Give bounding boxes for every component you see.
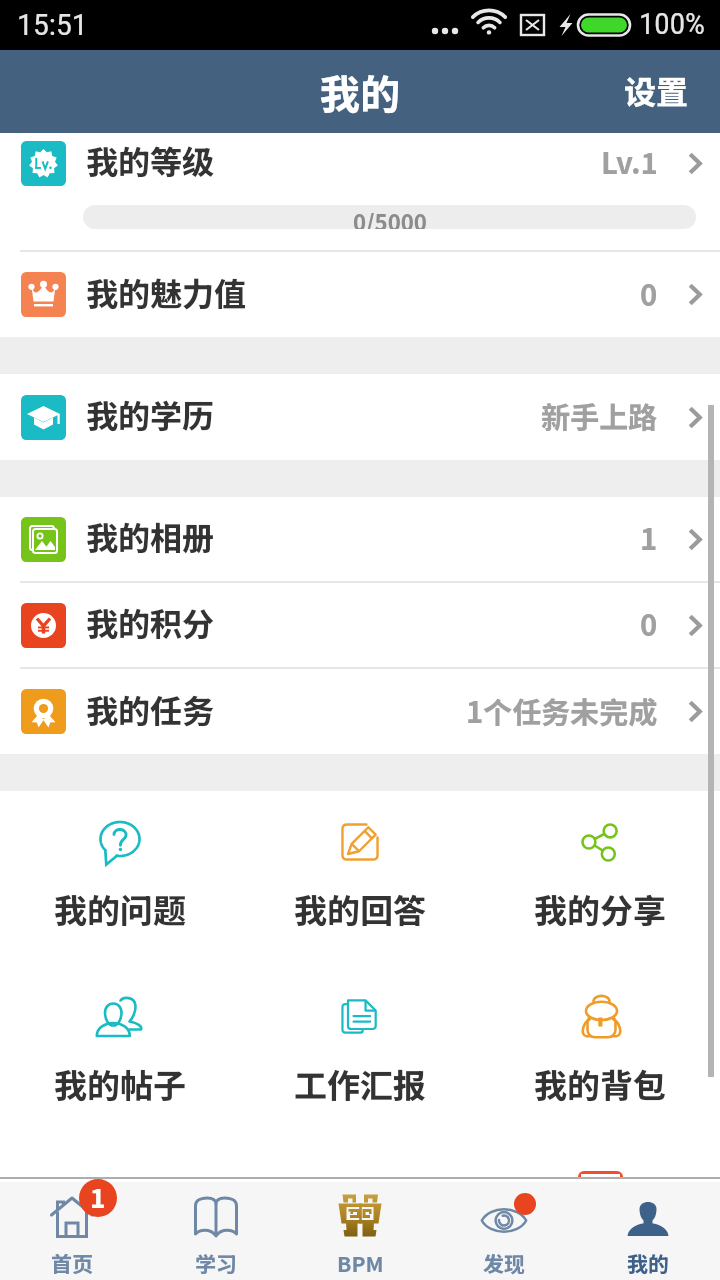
staticText: 我的回答 <box>294 885 426 933</box>
button[interactable]: 我的积分 <box>0 583 720 667</box>
button[interactable]: 学习 <box>144 1182 288 1280</box>
staticText: 我的相册 <box>86 513 215 559</box>
staticText: 0 <box>640 272 658 314</box>
staticText: 我的 <box>320 63 400 121</box>
staticText: 我的问题 <box>54 885 186 933</box>
button[interactable]: 1 <box>0 1182 144 1280</box>
staticText: 我的等级 <box>86 137 215 183</box>
button[interactable]: BPM <box>288 1182 432 1280</box>
button[interactable]: 我的问题 <box>0 818 240 933</box>
staticText: 0 <box>640 602 658 644</box>
staticText: 15:51 <box>17 7 88 42</box>
staticText: 0/5000 <box>353 205 427 229</box>
staticText: 我的魅力值 <box>86 269 247 315</box>
staticText: 1 <box>640 516 658 558</box>
staticText: 1 <box>90 1179 106 1216</box>
button[interactable]: 我的等级 <box>0 133 720 193</box>
staticText: 1个任务未完成 <box>466 689 658 731</box>
staticText: 发现 <box>483 1248 525 1278</box>
staticText: 我的帖子 <box>54 1060 186 1108</box>
button[interactable]: 我的学历 <box>0 374 720 460</box>
staticText: 我的背包 <box>534 1060 666 1108</box>
staticText: BPM <box>337 1248 384 1278</box>
staticText: 100% <box>639 7 705 41</box>
staticText: 学习 <box>195 1248 237 1278</box>
staticText: 我的学历 <box>86 391 215 437</box>
button[interactable]: 我的背包 <box>480 993 720 1108</box>
staticText: 首页 <box>51 1248 93 1278</box>
staticText: 新手上路 <box>541 394 658 436</box>
button[interactable]: 工作汇报 <box>240 993 480 1108</box>
staticText: 我的分享 <box>534 885 666 933</box>
button[interactable]: 我的帖子 <box>0 993 240 1108</box>
staticText: 我的积分 <box>86 599 215 645</box>
staticText: 设置 <box>624 67 689 113</box>
staticText: 我的 <box>627 1248 669 1278</box>
button[interactable]: 我的分享 <box>480 818 720 933</box>
button[interactable]: 设置 <box>600 51 720 129</box>
button[interactable]: 我的 <box>576 1182 720 1280</box>
button[interactable]: 发现 <box>432 1182 576 1280</box>
staticText: 我的任务 <box>86 686 215 732</box>
button[interactable]: 我的相册 <box>0 497 720 581</box>
button[interactable]: 我的魅力值 <box>0 252 720 337</box>
staticText: Lv.1 <box>601 140 658 182</box>
staticText: 工作汇报 <box>294 1060 426 1108</box>
button[interactable]: 我的任务 <box>0 669 720 754</box>
button[interactable]: 我的回答 <box>240 818 480 933</box>
